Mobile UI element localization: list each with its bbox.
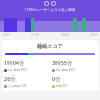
button[interactable]: 3時55分 <box>50 59 98 72</box>
button[interactable]: 26分 <box>2 75 50 88</box>
staticText: 1760のユーザーよりも良い睡眠 <box>0 7 100 12</box>
staticText: 深い睡眠 30% <box>8 68 27 72</box>
staticText: 01:00 <box>31 33 39 37</box>
staticText: 23:00 <box>2 33 10 37</box>
staticText: 26分 <box>4 75 16 83</box>
staticText: 05:21 <box>90 33 98 37</box>
staticText: 覚醒 0% <box>56 84 67 88</box>
staticText: 3時55分 <box>52 59 73 67</box>
button[interactable]: 0分 <box>50 75 98 88</box>
staticText: 浅い睡眠 60% <box>56 68 75 72</box>
staticText: 1時04分 <box>4 59 25 67</box>
staticText: 03:00 <box>61 33 69 37</box>
staticText: 睡眠スコア <box>2 43 98 49</box>
staticText: 0分 <box>52 75 61 83</box>
staticText: レム睡眠 10% <box>8 84 27 88</box>
button[interactable]: 1時04分 <box>2 59 50 72</box>
